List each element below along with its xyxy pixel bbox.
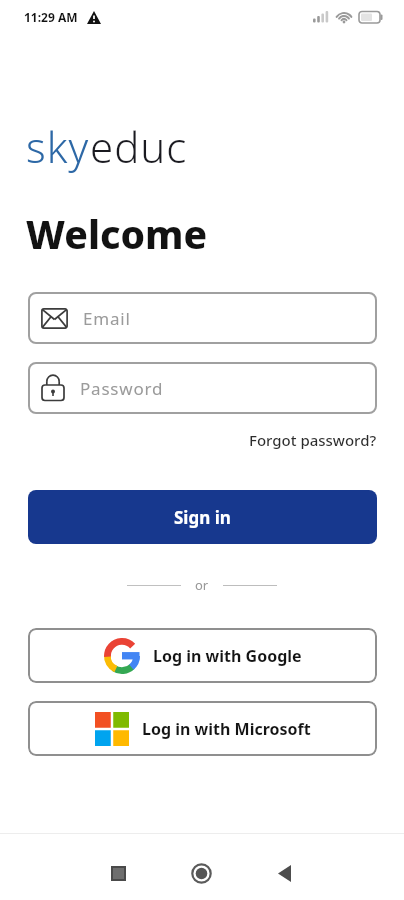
button[interactable]: Password (28, 362, 377, 414)
staticText: 11:29 AM (24, 9, 78, 25)
button[interactable]: Forgot password? (28, 430, 377, 450)
staticText: or (195, 576, 209, 594)
button[interactable]: Email (28, 292, 377, 344)
button[interactable]: Sign in (28, 490, 377, 544)
button[interactable] (97, 852, 140, 895)
staticText: Welcome (26, 207, 208, 260)
staticText: Sign in (174, 506, 231, 529)
staticText: Log in with Microsoft (142, 718, 311, 740)
staticText: Email (83, 307, 131, 330)
button[interactable] (263, 852, 306, 895)
staticText: Forgot password? (249, 430, 377, 450)
staticText: Password (80, 377, 164, 400)
staticText: sky (26, 118, 90, 175)
button[interactable]: Log in with Google (28, 628, 377, 683)
button[interactable] (180, 852, 223, 895)
staticText: educ (90, 118, 188, 175)
staticText: Log in with Google (153, 645, 302, 667)
button[interactable]: Log in with Microsoft (28, 701, 377, 756)
